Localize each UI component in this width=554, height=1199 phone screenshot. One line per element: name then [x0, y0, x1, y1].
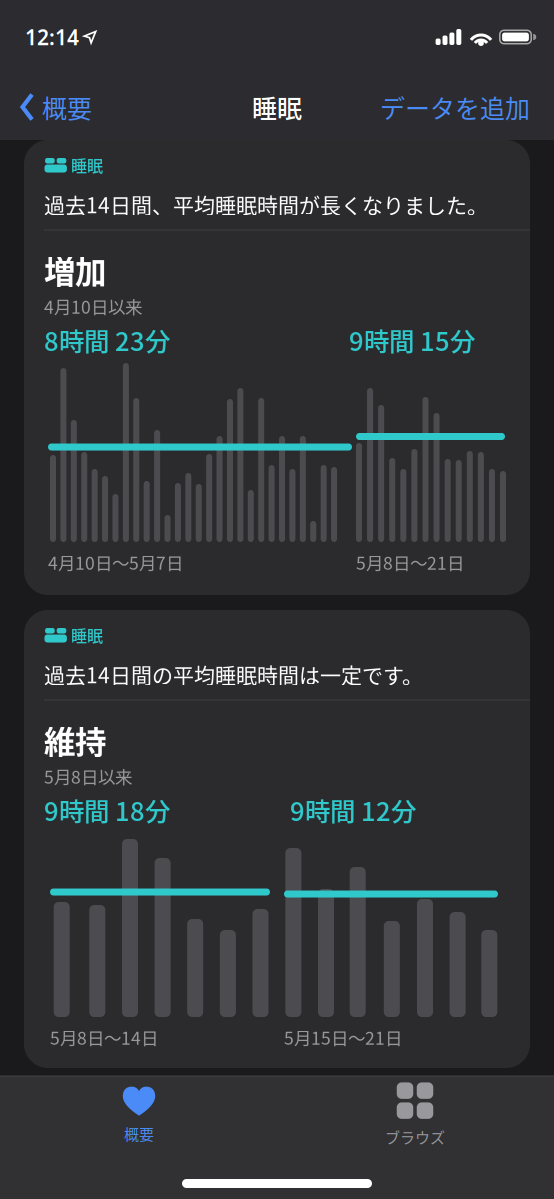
staticText: 9時間 12分 [290, 791, 416, 828]
button[interactable]: 睡眠 [24, 140, 530, 595]
staticText: 8時間 23分 [44, 321, 170, 358]
staticText: 概要 [42, 89, 92, 125]
staticText: 9時間 15分 [349, 321, 475, 358]
staticText: 5月15日〜21日 [284, 1024, 402, 1050]
staticText: 睡眠 [71, 153, 103, 177]
staticText: 4月10日以来 [44, 293, 142, 319]
staticText: 4月10日〜5月7日 [48, 549, 183, 575]
staticText: 維持 [44, 717, 106, 763]
staticText: データを追加 [380, 89, 530, 125]
staticText: 5月8日〜14日 [50, 1024, 158, 1050]
button[interactable]: 概要 [122, 1086, 156, 1144]
staticText: 5月8日以来 [44, 763, 132, 789]
staticText: 5月8日〜21日 [356, 549, 464, 575]
staticText: 睡眠 [252, 89, 302, 125]
staticText: 概要 [124, 1123, 154, 1144]
staticText: 9時間 18分 [44, 791, 170, 828]
button[interactable]: データを追加 [310, 89, 530, 125]
button[interactable]: 概要 [20, 89, 170, 125]
button[interactable]: ブラウズ [385, 1082, 445, 1148]
staticText: 12:14 [25, 23, 79, 51]
staticText: 増加 [44, 247, 106, 293]
button[interactable]: 睡眠 [24, 610, 530, 1068]
staticText: 睡眠 [71, 623, 103, 647]
staticText: 過去14日間、平均睡眠時間が長くなりました。 [44, 189, 488, 219]
staticText: ブラウズ [385, 1126, 445, 1148]
staticText: 過去14日間の平均睡眠時間は一定です。 [44, 659, 423, 689]
